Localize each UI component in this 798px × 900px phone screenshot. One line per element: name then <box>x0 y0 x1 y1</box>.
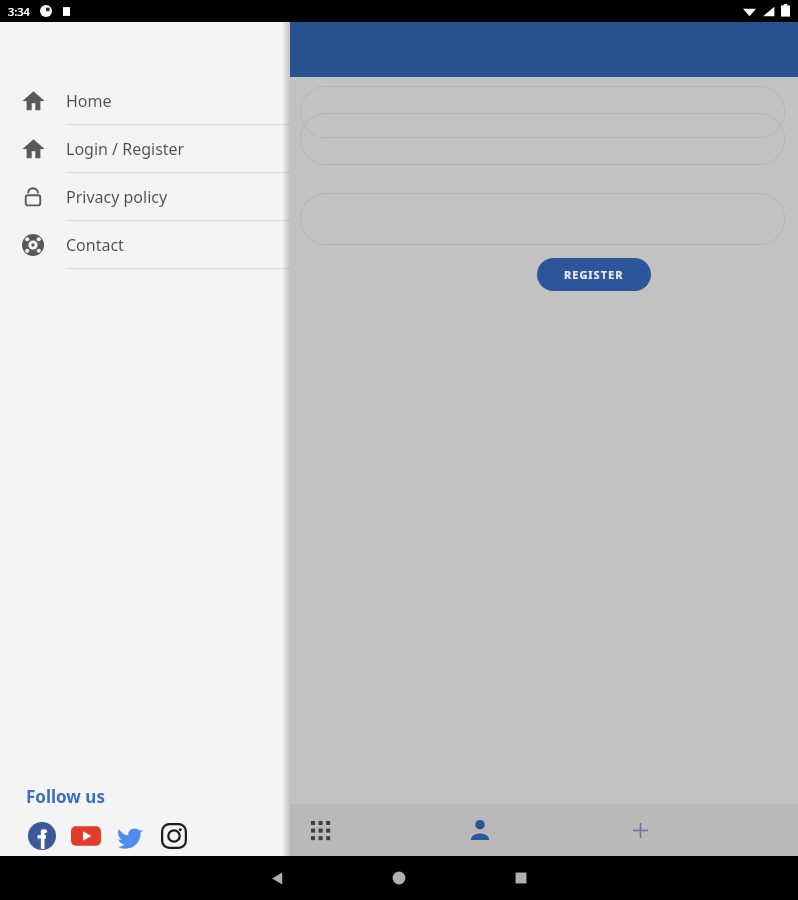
button[interactable] <box>300 113 785 165</box>
staticText: Contact <box>66 234 124 256</box>
button[interactable]: Login / Register <box>0 125 290 172</box>
staticText: Privacy policy <box>66 186 168 208</box>
button[interactable]: Add <box>614 804 666 856</box>
button[interactable] <box>300 86 785 138</box>
button[interactable]: Facebook <box>24 818 60 854</box>
staticText: Follow us <box>26 785 105 808</box>
button[interactable]: Profile <box>454 804 506 856</box>
button[interactable]: Apps <box>294 804 346 856</box>
button[interactable]: Instagram <box>156 818 192 854</box>
button[interactable]: Home <box>0 77 290 124</box>
button[interactable]: Twitter <box>112 818 148 854</box>
staticText: 3:34 <box>8 4 30 19</box>
staticText: Home <box>66 90 112 112</box>
button[interactable]: Back <box>269 870 286 887</box>
staticText: Login / Register <box>66 138 185 160</box>
button[interactable]: Home <box>391 870 407 886</box>
button[interactable]: YouTube <box>68 818 104 854</box>
button[interactable]: Recents <box>513 870 529 886</box>
button[interactable]: Contact <box>0 221 290 268</box>
button[interactable]: REGISTER <box>537 258 651 291</box>
button[interactable]: Privacy policy <box>0 173 290 220</box>
staticText: REGISTER <box>564 267 624 282</box>
